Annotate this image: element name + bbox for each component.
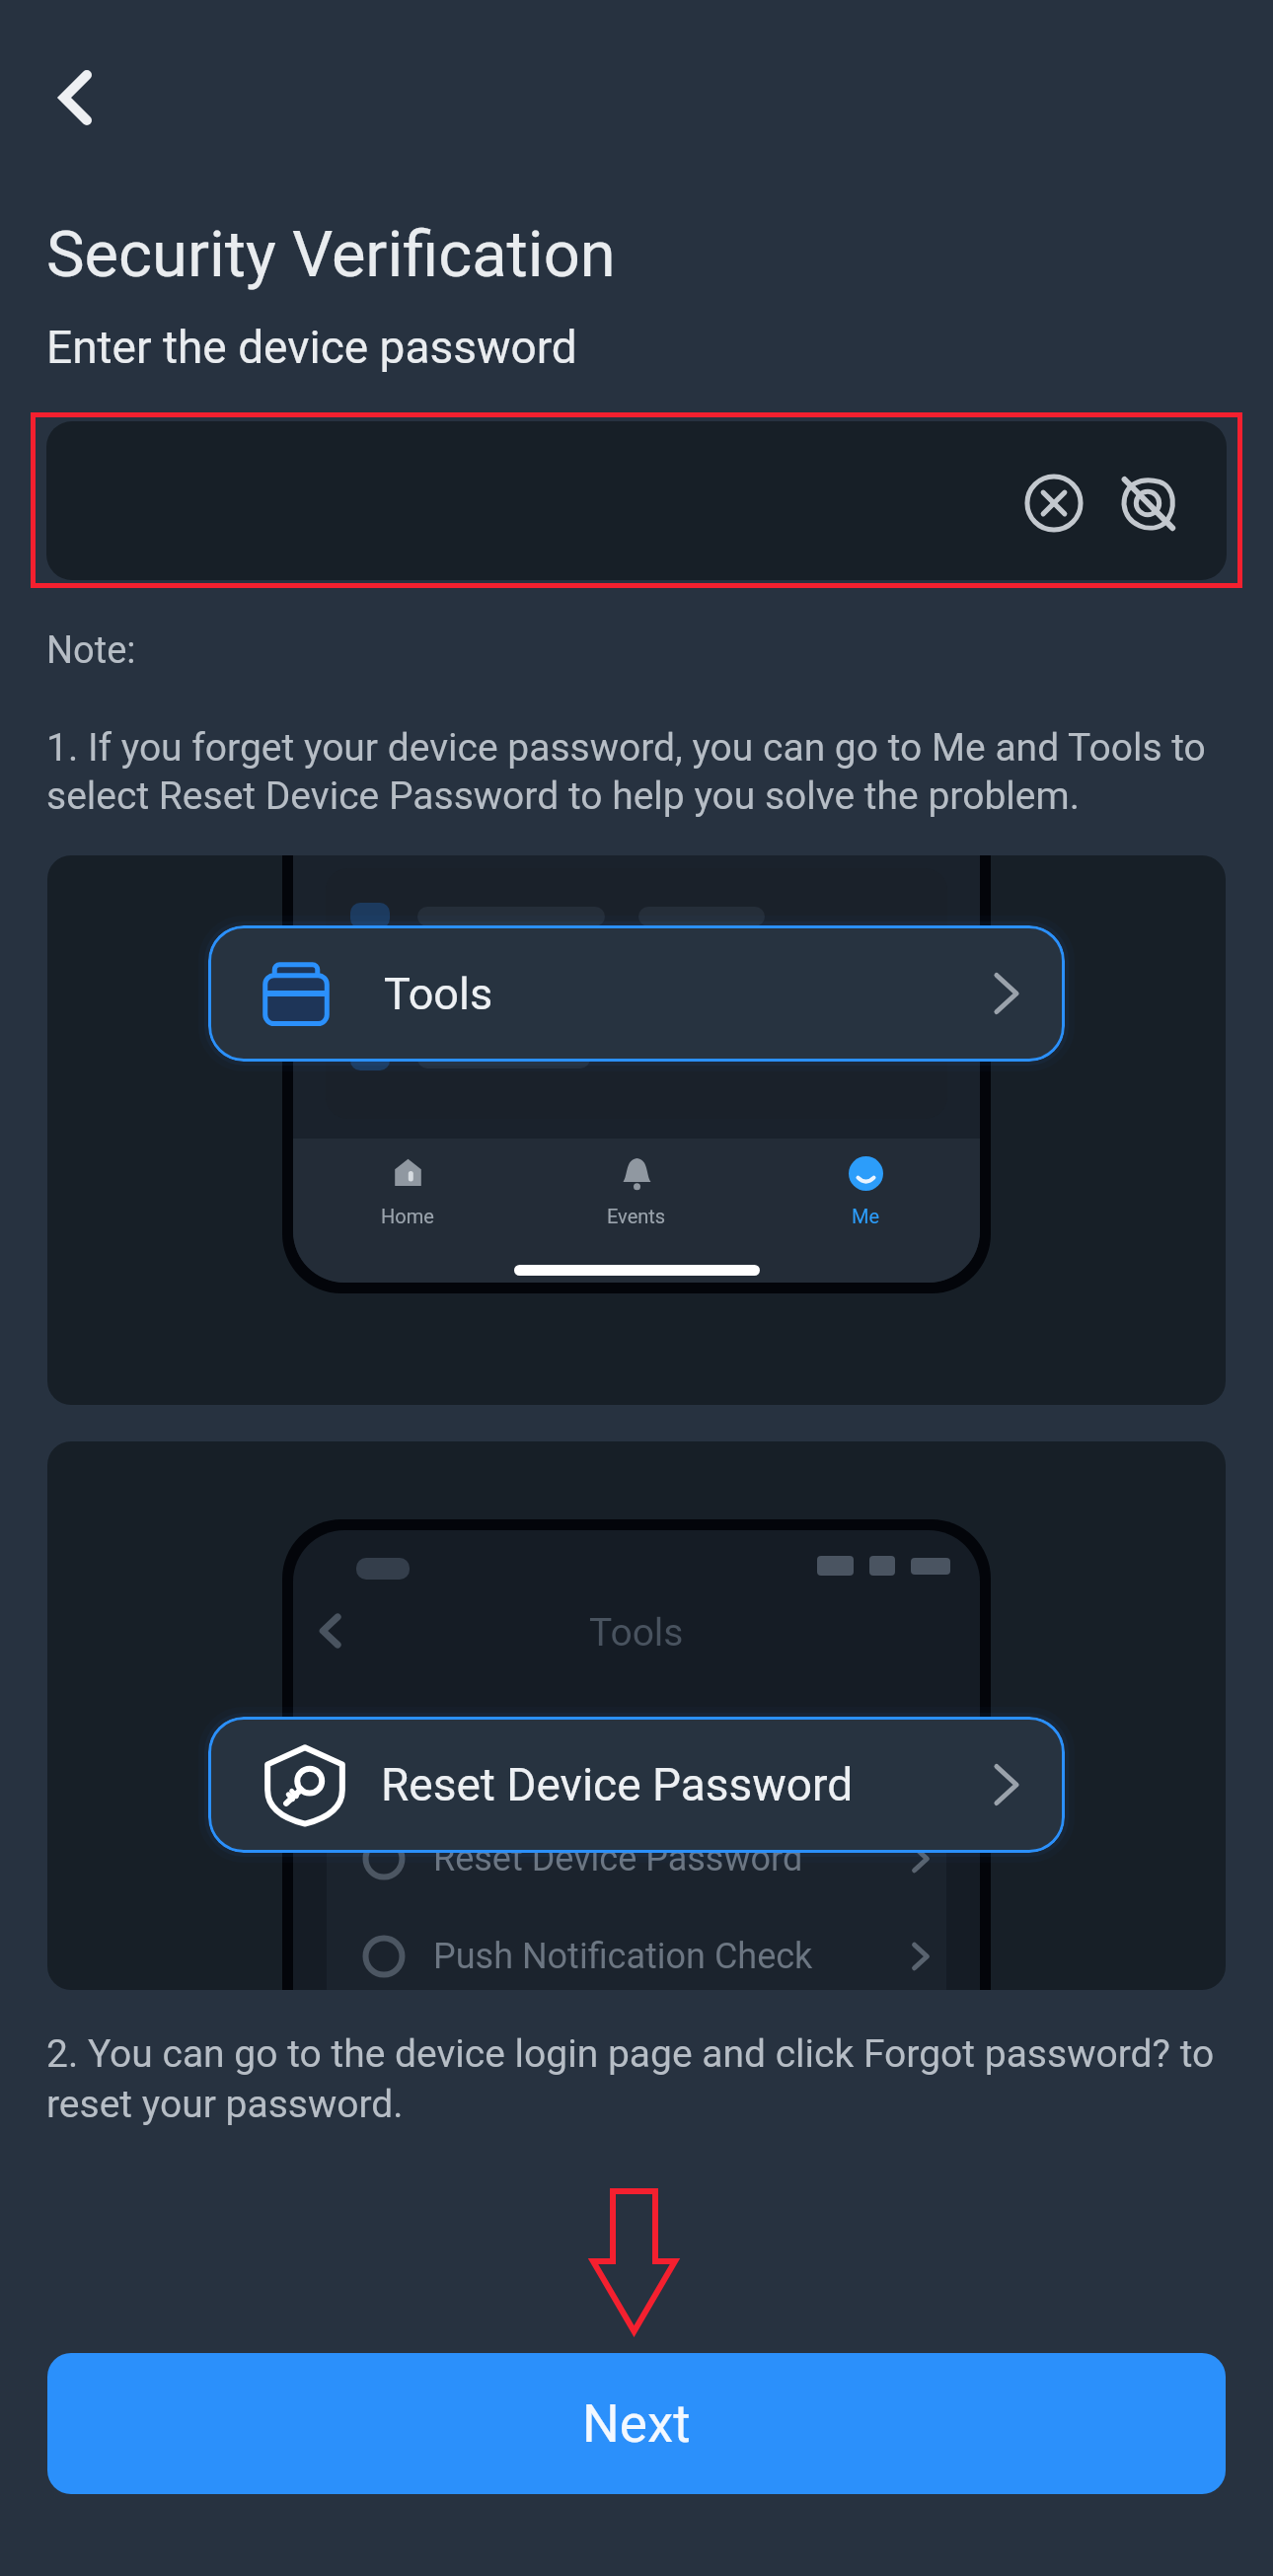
- staticText: Reset Device Password: [381, 1758, 854, 1811]
- staticText: Me: [852, 1205, 880, 1227]
- staticText: Note:: [46, 628, 136, 673]
- staticText: Tools: [589, 1610, 684, 1656]
- button[interactable]: [46, 421, 1227, 580]
- staticText: Enter the device password: [46, 321, 577, 374]
- staticText: Security Verification: [46, 217, 616, 292]
- staticText: 2. You can go to the device login page a…: [46, 2031, 1231, 2126]
- staticText: Push Notification Check: [433, 1936, 813, 1977]
- button[interactable]: Reset Device Password: [208, 1717, 1065, 1853]
- button[interactable]: Events: [522, 1156, 751, 1227]
- button[interactable]: Me: [751, 1156, 980, 1227]
- button[interactable]: Next: [47, 2353, 1226, 2494]
- button[interactable]: Back: [36, 58, 114, 137]
- staticText: Home: [381, 1205, 434, 1227]
- staticText: Next: [582, 2393, 691, 2455]
- button[interactable]: Clear: [1021, 471, 1086, 536]
- staticText: 1. If you forget your device password, y…: [46, 725, 1231, 818]
- staticText: Tools: [384, 968, 493, 1020]
- staticText: Reset Device Password: [433, 1838, 803, 1879]
- staticText: Events: [607, 1205, 666, 1227]
- button[interactable]: Show password: [1118, 474, 1177, 533]
- button[interactable]: Tools: [208, 925, 1065, 1062]
- button[interactable]: Home: [293, 1156, 522, 1227]
